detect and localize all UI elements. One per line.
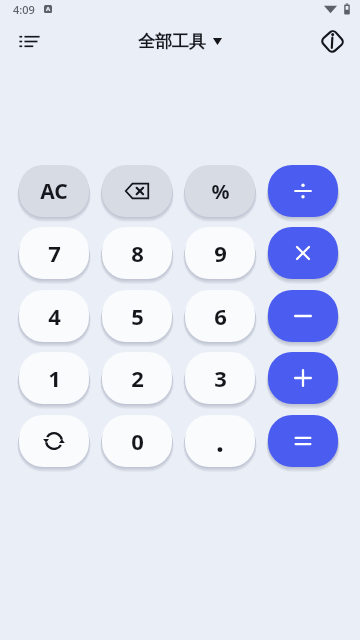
button[interactable]: Reset <box>19 415 89 467</box>
button[interactable]: 1 <box>19 352 89 404</box>
staticText: AC <box>40 177 68 206</box>
button[interactable]: 9 <box>185 227 255 279</box>
button[interactable]: History list <box>13 27 45 55</box>
button[interactable]: 0 <box>102 415 172 467</box>
button[interactable]: Divide <box>268 165 338 217</box>
button[interactable]: 全部工具 <box>132 28 228 55</box>
button[interactable]: 7 <box>19 227 89 279</box>
staticText: 1 <box>48 363 61 393</box>
staticText: A <box>46 5 51 13</box>
button[interactable]: 4 <box>19 290 89 342</box>
button[interactable]: . <box>185 415 255 467</box>
button[interactable]: 2 <box>102 352 172 404</box>
staticText: . <box>216 422 224 460</box>
button[interactable]: Plus <box>268 352 338 404</box>
staticText: 全部工具 <box>138 31 206 52</box>
staticText: 4 <box>48 301 61 331</box>
staticText: 6 <box>214 301 227 331</box>
staticText: 2 <box>131 363 144 393</box>
button[interactable]: Minus <box>268 290 338 342</box>
button[interactable]: Unit converter <box>316 27 348 55</box>
button[interactable]: Equals <box>268 415 338 467</box>
staticText: 4:09 <box>13 2 35 17</box>
button[interactable]: AC <box>19 165 89 217</box>
staticText: % <box>211 178 230 205</box>
button[interactable]: 3 <box>185 352 255 404</box>
staticText: 3 <box>214 363 227 393</box>
button[interactable]: 8 <box>102 227 172 279</box>
staticText: 9 <box>214 238 227 268</box>
button[interactable]: 5 <box>102 290 172 342</box>
staticText: 8 <box>131 238 144 268</box>
staticText: 0 <box>131 426 144 456</box>
button[interactable]: Multiply <box>268 227 338 279</box>
button[interactable]: 6 <box>185 290 255 342</box>
button[interactable]: % <box>185 165 255 217</box>
button[interactable]: Backspace <box>102 165 172 217</box>
staticText: 7 <box>48 238 61 268</box>
staticText: 5 <box>131 301 144 331</box>
